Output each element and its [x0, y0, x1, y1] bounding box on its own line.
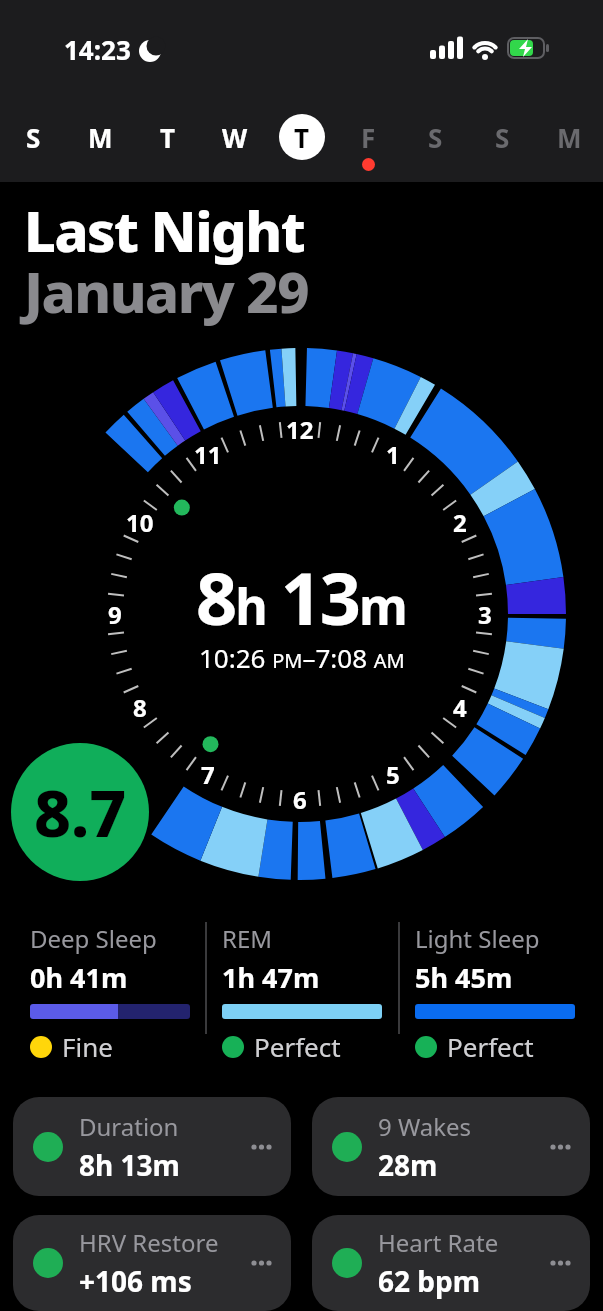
staticText: +106 ms — [79, 1262, 192, 1300]
staticText: HRV Restore — [79, 1226, 219, 1259]
staticText: 7 — [201, 758, 215, 790]
staticText: 62 bpm — [378, 1262, 481, 1300]
staticText: 28m — [378, 1146, 438, 1184]
staticText: 6 — [293, 783, 307, 815]
staticText: T — [160, 120, 176, 155]
staticText: 2 — [453, 506, 467, 538]
staticText: 4 — [453, 691, 467, 723]
button[interactable]: 9 Wakes — [312, 1097, 590, 1196]
staticText: M — [557, 120, 582, 155]
button[interactable]: M — [536, 92, 603, 182]
staticText: 8h 13m — [196, 548, 408, 646]
button[interactable]: S — [469, 92, 536, 182]
staticText: 0h 41m — [30, 959, 128, 996]
staticText: Perfect — [447, 1029, 534, 1064]
staticText: 3 — [478, 598, 492, 630]
staticText: Perfect — [254, 1029, 341, 1064]
staticText: S — [495, 120, 510, 155]
button[interactable]: S — [0, 92, 67, 182]
staticText: Fine — [62, 1029, 113, 1064]
staticText: S — [26, 120, 41, 155]
staticText: S — [428, 120, 443, 155]
staticText: REM — [222, 922, 273, 955]
button[interactable]: T — [268, 92, 335, 182]
staticText: F — [361, 120, 376, 155]
staticText: Last Night January 29 — [24, 192, 309, 329]
button[interactable]: W — [201, 92, 268, 182]
staticText: 5h 45m — [415, 959, 513, 996]
staticText: W — [222, 120, 248, 155]
staticText: 8 — [133, 691, 147, 723]
staticText: Deep Sleep — [30, 922, 157, 955]
staticText: Duration — [79, 1110, 179, 1143]
staticText: 8.7 — [34, 769, 127, 856]
button[interactable]: HRV Restore — [13, 1215, 291, 1311]
button[interactable]: M — [67, 92, 134, 182]
staticText: 10:26 PM–7:08 AM — [199, 640, 405, 675]
staticText: 1 — [386, 438, 400, 470]
staticText: T — [294, 120, 310, 155]
button[interactable]: Light Sleep — [415, 922, 603, 1064]
staticText: M — [88, 120, 113, 155]
staticText: 14:23 — [64, 32, 131, 67]
staticText: 11 — [194, 438, 222, 470]
staticText: 9 Wakes — [378, 1110, 472, 1143]
staticText: 12 — [286, 413, 314, 445]
staticText: 5 — [386, 758, 400, 790]
button[interactable]: S — [402, 92, 469, 182]
staticText: 1h 47m — [222, 959, 320, 996]
staticText: 10 — [126, 506, 154, 538]
button[interactable]: F — [335, 92, 402, 182]
button[interactable]: 8.7 — [11, 743, 149, 881]
button[interactable]: REM — [222, 922, 398, 1064]
button[interactable]: Duration — [13, 1097, 291, 1196]
staticText: Heart Rate — [378, 1226, 499, 1259]
button[interactable]: Heart Rate — [312, 1215, 590, 1311]
button[interactable]: Deep Sleep — [30, 922, 205, 1064]
staticText: 8h 13m — [79, 1146, 180, 1184]
staticText: 9 — [108, 598, 122, 630]
staticText: Light Sleep — [415, 922, 540, 955]
button[interactable]: T — [134, 92, 201, 182]
